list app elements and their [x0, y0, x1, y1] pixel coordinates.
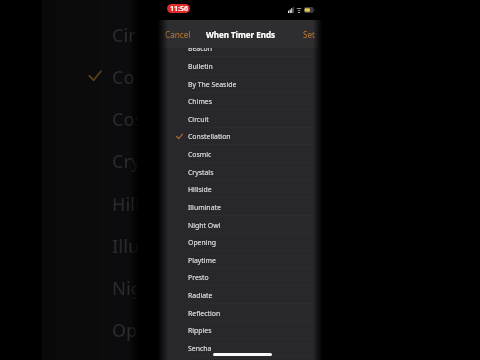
staticText: Reflection: [188, 309, 221, 318]
button[interactable]: Cancel: [160, 24, 196, 45]
staticText: Cir: [112, 23, 136, 48]
staticText: 11:56: [170, 4, 188, 13]
button[interactable]: Reflection: [158, 304, 322, 322]
staticText: Cos: [112, 107, 138, 132]
button[interactable]: By The Seaside: [158, 75, 322, 93]
staticText: By The Seaside: [188, 80, 237, 89]
staticText: Radiate: [188, 291, 213, 300]
button[interactable]: Set: [298, 24, 321, 45]
staticText: Illuminate: [188, 203, 221, 212]
staticText: When Timer Ends: [206, 29, 275, 40]
staticText: Cosmic: [188, 150, 212, 159]
button[interactable]: Playtime: [158, 251, 322, 269]
staticText: Bulletin: [188, 62, 213, 71]
staticText: Co: [112, 65, 135, 90]
staticText: Sencha: [188, 344, 212, 353]
staticText: Crystals: [188, 168, 214, 177]
button[interactable]: Cosmic: [158, 145, 322, 163]
button[interactable]: Night Owl: [158, 216, 322, 234]
staticText: Hill: [112, 192, 138, 217]
button[interactable]: Sencha: [158, 339, 322, 357]
staticText: Op: [112, 318, 138, 343]
staticText: Ripples: [188, 326, 212, 335]
staticText: Illu: [112, 234, 138, 259]
staticText: Chimes: [188, 97, 213, 106]
staticText: Playtime: [188, 256, 216, 265]
staticText: Circuit: [188, 115, 209, 124]
button[interactable]: Chimes: [158, 92, 322, 110]
button[interactable]: Bulletin: [158, 57, 322, 75]
button[interactable]: Opening: [158, 233, 322, 251]
button[interactable]: Presto: [158, 268, 322, 286]
staticText: Hillside: [188, 185, 212, 194]
staticText: Presto: [188, 273, 209, 282]
button[interactable]: Hillside: [158, 180, 322, 198]
button[interactable]: Constellation: [158, 127, 322, 145]
staticText: Opening: [188, 238, 217, 247]
button[interactable]: Beacon: [158, 39, 322, 57]
button[interactable]: Crystals: [158, 163, 322, 181]
button[interactable]: Ripples: [158, 321, 322, 339]
button[interactable]: Illuminate: [158, 198, 322, 216]
button[interactable]: Radiate: [158, 286, 322, 304]
staticText: Nig: [112, 276, 138, 301]
staticText: Beacon: [188, 44, 212, 53]
staticText: Set: [303, 29, 316, 40]
staticText: Night Owl: [188, 221, 221, 230]
staticText: Constellation: [188, 132, 231, 141]
staticText: Cry: [112, 149, 138, 174]
staticText: Cancel: [165, 29, 191, 40]
button[interactable]: Circuit: [158, 110, 322, 128]
